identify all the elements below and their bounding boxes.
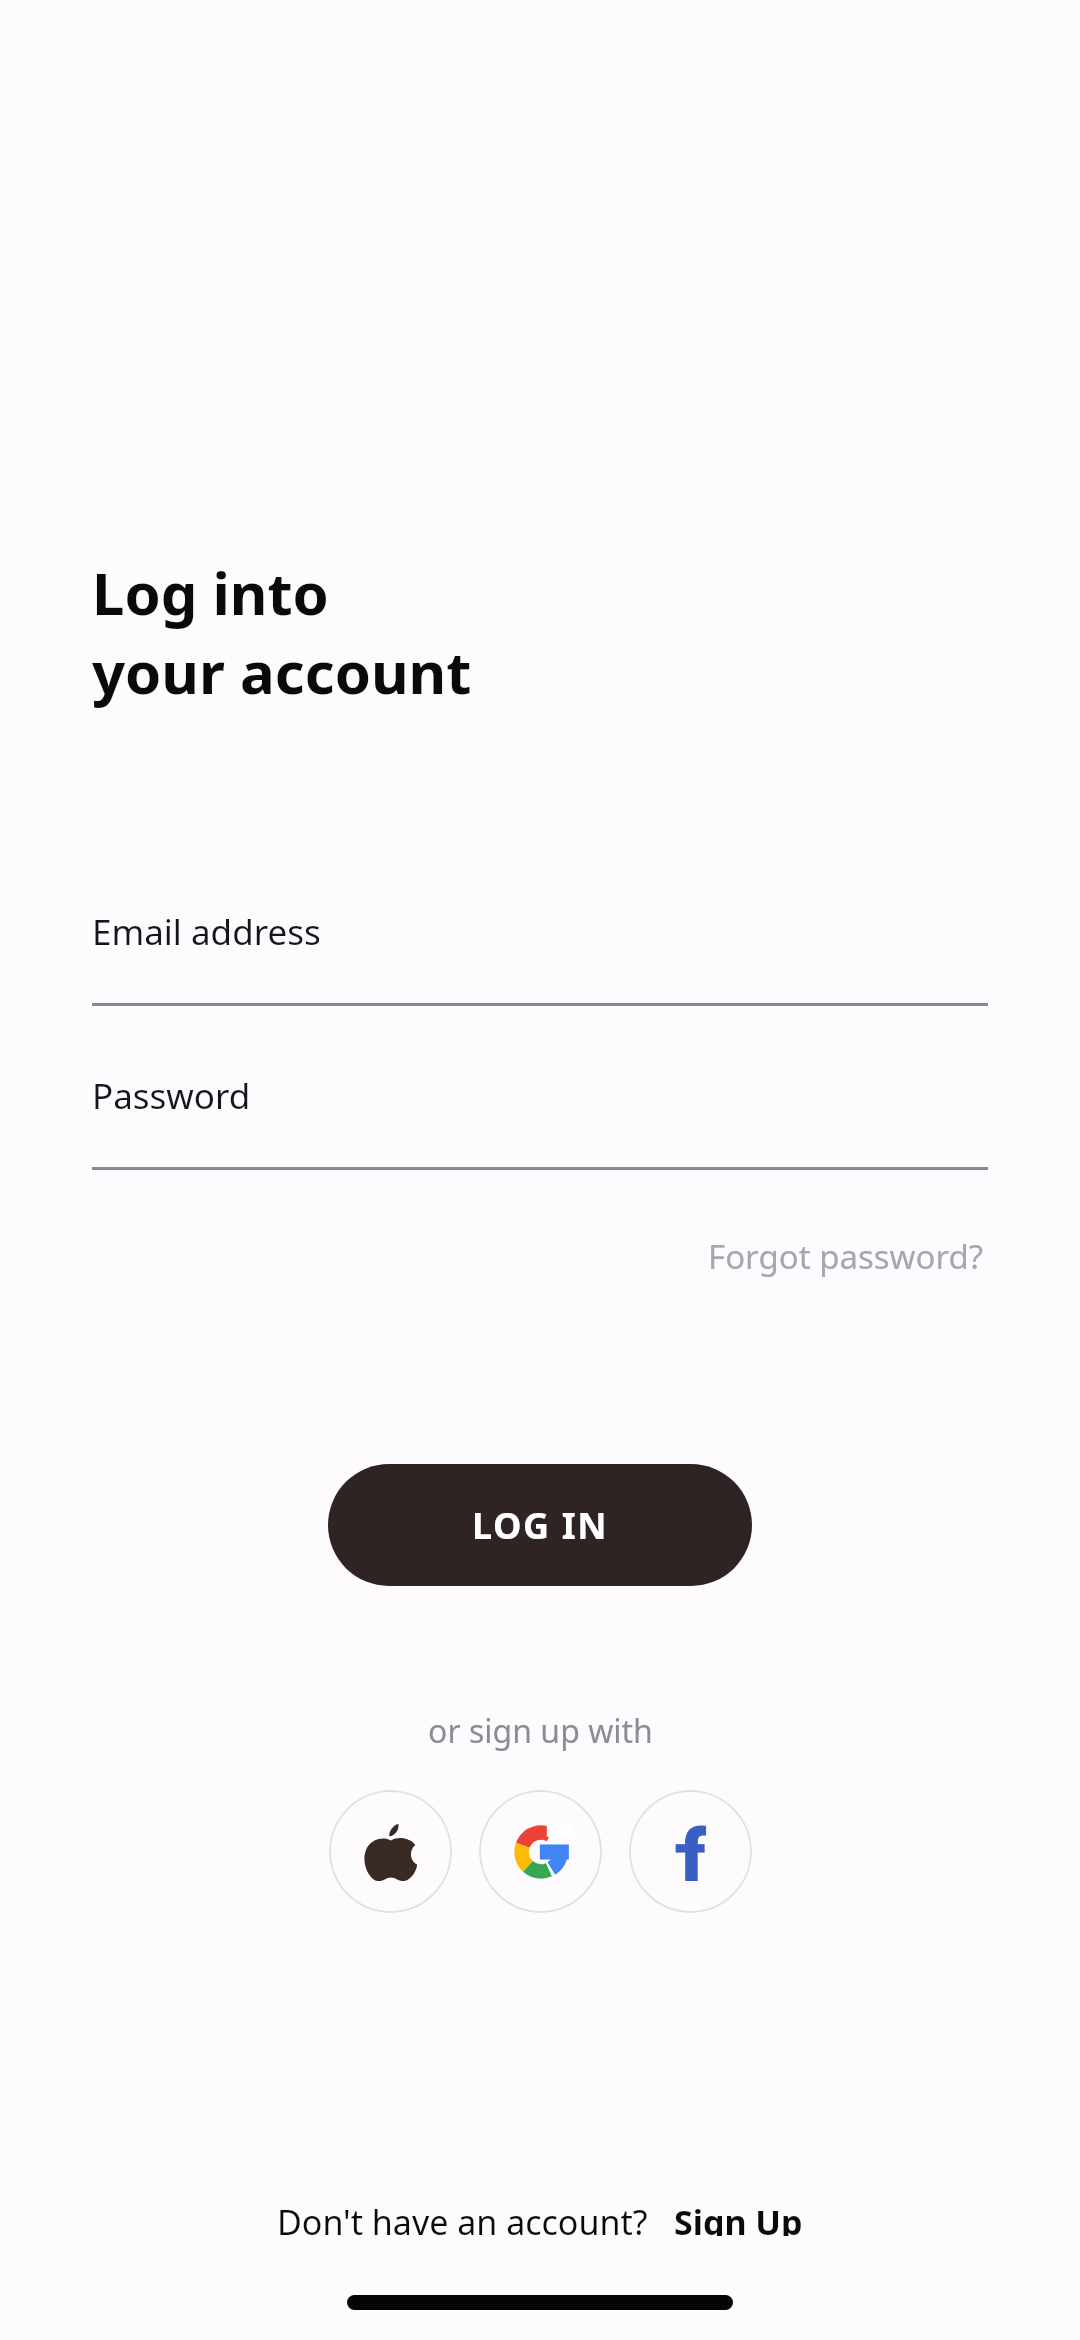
button[interactable]: LOG IN [328, 1464, 752, 1586]
button[interactable]: Sign Up [674, 2199, 803, 2236]
staticText: Sign Up [674, 2199, 803, 2236]
button[interactable]: Sign in with Google [479, 1790, 602, 1913]
button[interactable]: Forgot password? [704, 1224, 988, 1289]
button[interactable]: Sign in with Apple [329, 1790, 452, 1913]
staticText: or sign up with [428, 1709, 653, 1753]
button[interactable]: Email address [92, 908, 988, 1028]
staticText: Log into [92, 553, 329, 632]
staticText: Password [92, 1072, 251, 1120]
staticText: LOG IN [472, 1501, 609, 1550]
staticText: your account [92, 632, 472, 711]
staticText: Email address [92, 908, 321, 956]
button[interactable]: Password [92, 1072, 988, 1192]
staticText: Forgot password? [708, 1234, 984, 1279]
staticText: Don't have an account? [277, 2199, 648, 2236]
button[interactable]: Sign in with Facebook [629, 1790, 752, 1913]
